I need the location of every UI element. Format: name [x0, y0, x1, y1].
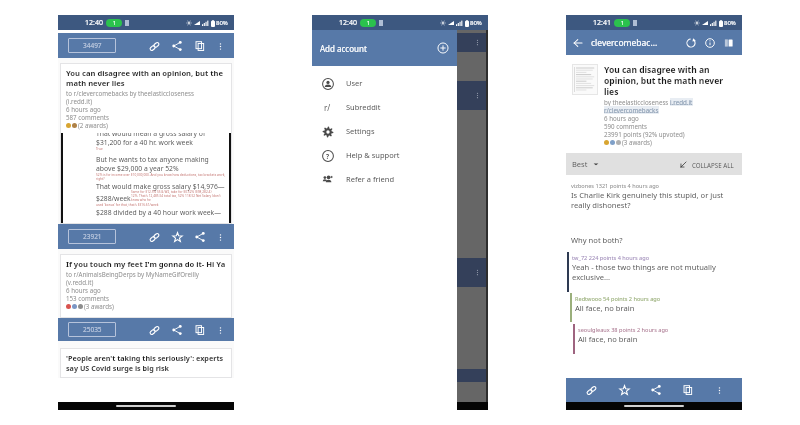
button[interactable]: seoulgleaux 38 points 2 hours ago — [566, 324, 742, 354]
button[interactable]: 34497 — [68, 38, 116, 53]
other: Back — [572, 37, 584, 49]
button[interactable]: vizbones 1321 points 4 hours ago — [566, 182, 742, 210]
staticText: Help & support — [346, 150, 400, 160]
staticText: Is Charlie Kirk genuinely this stupid, o… — [571, 190, 734, 210]
button[interactable]: You can disagree with an opinion, but th… — [60, 63, 232, 224]
staticText: True — [96, 147, 103, 151]
button[interactable]: Favourite — [168, 228, 186, 246]
button[interactable]: Collapse all — [679, 160, 734, 169]
staticText: by theelasticcloseness — [604, 98, 670, 106]
button[interactable]: More options — [213, 230, 227, 244]
button[interactable]: 25035 — [68, 322, 116, 337]
other: Share — [395, 62, 405, 72]
staticText: 80% — [470, 19, 482, 27]
button[interactable]: Refresh — [683, 35, 699, 51]
staticText: Why not both? — [571, 235, 623, 245]
button[interactable]: Share — [191, 228, 209, 246]
staticText: All face, no brain — [575, 303, 635, 313]
staticText: You can disagree with an opinion, but th… — [66, 68, 226, 88]
staticText: 587 comments — [66, 113, 110, 121]
staticText: clevercomebac... — [591, 37, 658, 49]
staticText: vizbones 1321 points 4 hours ago — [571, 182, 659, 190]
other: Copy — [682, 384, 694, 396]
other: Link — [585, 384, 598, 397]
button[interactable]: Copy — [191, 321, 209, 339]
button[interactable]: Copy — [678, 380, 698, 400]
staticText: (2 awards) — [78, 121, 108, 129]
staticText: That would mean a gross salary of — [96, 133, 206, 138]
button[interactable]: More options — [711, 382, 727, 398]
other: Link — [148, 231, 161, 244]
staticText: to r/clevercomebacks by theelasticclosen… — [66, 89, 194, 97]
other: Copy — [194, 40, 206, 52]
button[interactable]: More options — [213, 323, 227, 337]
other: More options — [472, 267, 483, 278]
button[interactable]: Info — [702, 35, 718, 51]
button[interactable]: r/ — [312, 95, 457, 119]
staticText: 12:41 — [593, 18, 611, 28]
staticText: Redtwooo 54 points 2 hours ago — [575, 295, 661, 303]
other: More options — [713, 384, 726, 397]
staticText: Settings — [346, 126, 375, 136]
button[interactable]: tw_72 224 points 4 hours ago — [566, 252, 742, 292]
staticText: COLLAPSE ALL — [692, 161, 734, 169]
staticText: But he wants to tax anyone making — [96, 155, 209, 164]
button[interactable]: Favourite — [614, 380, 634, 400]
button[interactable]: Link — [145, 321, 163, 339]
staticText: 1 — [113, 20, 116, 27]
other: Share — [194, 231, 206, 243]
other: Share — [171, 40, 183, 52]
staticText: 23921 — [83, 232, 102, 241]
other: Copy — [194, 324, 206, 336]
button[interactable]: Best — [572, 159, 599, 169]
staticText: (i.redd.it) — [66, 97, 92, 105]
staticText: 12:40 — [339, 18, 357, 28]
button[interactable]: Back — [570, 35, 586, 51]
staticText: Best — [572, 159, 588, 169]
button[interactable]: Share — [168, 321, 186, 339]
staticText: (3 awards) — [622, 138, 652, 146]
button[interactable]: Add account — [312, 30, 457, 66]
button[interactable]: Link — [145, 37, 163, 55]
other: More options — [214, 40, 227, 53]
staticText: Refer a friend — [346, 174, 394, 184]
staticText: Same for $12.5% SS & W2, take for $0.52%… — [131, 190, 212, 194]
button[interactable]: Refer a friend — [312, 167, 457, 191]
other: More options — [214, 324, 227, 337]
button[interactable]: Copy — [191, 37, 209, 55]
button[interactable]: Share — [168, 37, 186, 55]
button[interactable]: Settings — [312, 119, 457, 143]
button[interactable]: User — [312, 71, 457, 95]
other: Add account — [437, 42, 449, 54]
staticText: $31,200 for a 40 hr. work week — [96, 138, 193, 147]
button[interactable]: ? — [312, 143, 457, 167]
button[interactable]: If you touch my feet I'm gonna do it- Hi… — [60, 254, 232, 318]
staticText: 6 hours ago — [66, 286, 101, 294]
button[interactable]: Reading mode — [721, 35, 737, 51]
staticText: 'People aren't taking this seriously': e… — [66, 353, 226, 373]
button[interactable]: Redtwooo 54 points 2 hours ago — [566, 293, 742, 322]
other: More options — [472, 90, 483, 101]
staticText: 1 — [367, 20, 370, 27]
button[interactable]: Link — [581, 380, 601, 400]
staticText: All face, no brain — [578, 334, 638, 344]
staticText: r/clevercomebacks — [604, 106, 659, 114]
staticText: 23991 points (92% upvoted) — [604, 130, 685, 138]
staticText: ? — [326, 152, 330, 161]
button[interactable]: Share — [646, 380, 666, 400]
button[interactable]: 'People aren't taking this seriously': e… — [60, 348, 232, 378]
staticText: 12%. That's 12,485.54 total tax, 52% 118… — [131, 194, 227, 202]
staticText: used 'bonus' for that, that's $316.61/we… — [96, 203, 159, 207]
button[interactable]: 23921 — [68, 229, 116, 244]
staticText: 80% — [724, 19, 736, 27]
staticText: If you touch my feet I'm gonna do it- Hi… — [66, 259, 226, 269]
staticText: i.redd.it — [670, 98, 693, 106]
button[interactable]: Link — [145, 228, 163, 246]
button[interactable]: More options — [213, 39, 227, 53]
staticText: 80% — [216, 19, 228, 27]
staticText: You can disagree with an opinion, but th… — [604, 64, 736, 97]
other: Reading mode — [723, 37, 735, 49]
